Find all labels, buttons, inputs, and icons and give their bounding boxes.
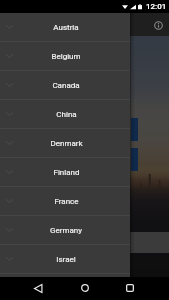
- staticText: Germany: [50, 226, 82, 235]
- button[interactable]: Canada: [0, 71, 130, 100]
- staticText: 12:01: [146, 2, 167, 11]
- button[interactable]: Info: [150, 17, 166, 33]
- button[interactable]: Recent apps: [122, 280, 138, 296]
- button[interactable]: China: [0, 100, 130, 129]
- button[interactable]: Denmark: [0, 129, 130, 158]
- button[interactable]: Austria: [0, 13, 130, 42]
- staticText: Israel: [56, 255, 76, 264]
- staticText: Canada: [52, 81, 80, 90]
- button[interactable]: Back: [30, 280, 46, 296]
- button[interactable]: Finland: [0, 158, 130, 187]
- staticText: France: [54, 197, 79, 206]
- staticText: Denmark: [50, 139, 83, 148]
- staticText: Belgium: [51, 52, 81, 61]
- staticText: China: [56, 110, 77, 119]
- button[interactable]: Germany: [0, 216, 130, 245]
- button[interactable]: France: [0, 187, 130, 216]
- staticText: Austria: [53, 23, 79, 32]
- button[interactable]: Belgium: [0, 42, 130, 71]
- button[interactable]: Home: [77, 280, 93, 296]
- staticText: Finland: [53, 168, 80, 177]
- button[interactable]: Israel: [0, 245, 130, 274]
